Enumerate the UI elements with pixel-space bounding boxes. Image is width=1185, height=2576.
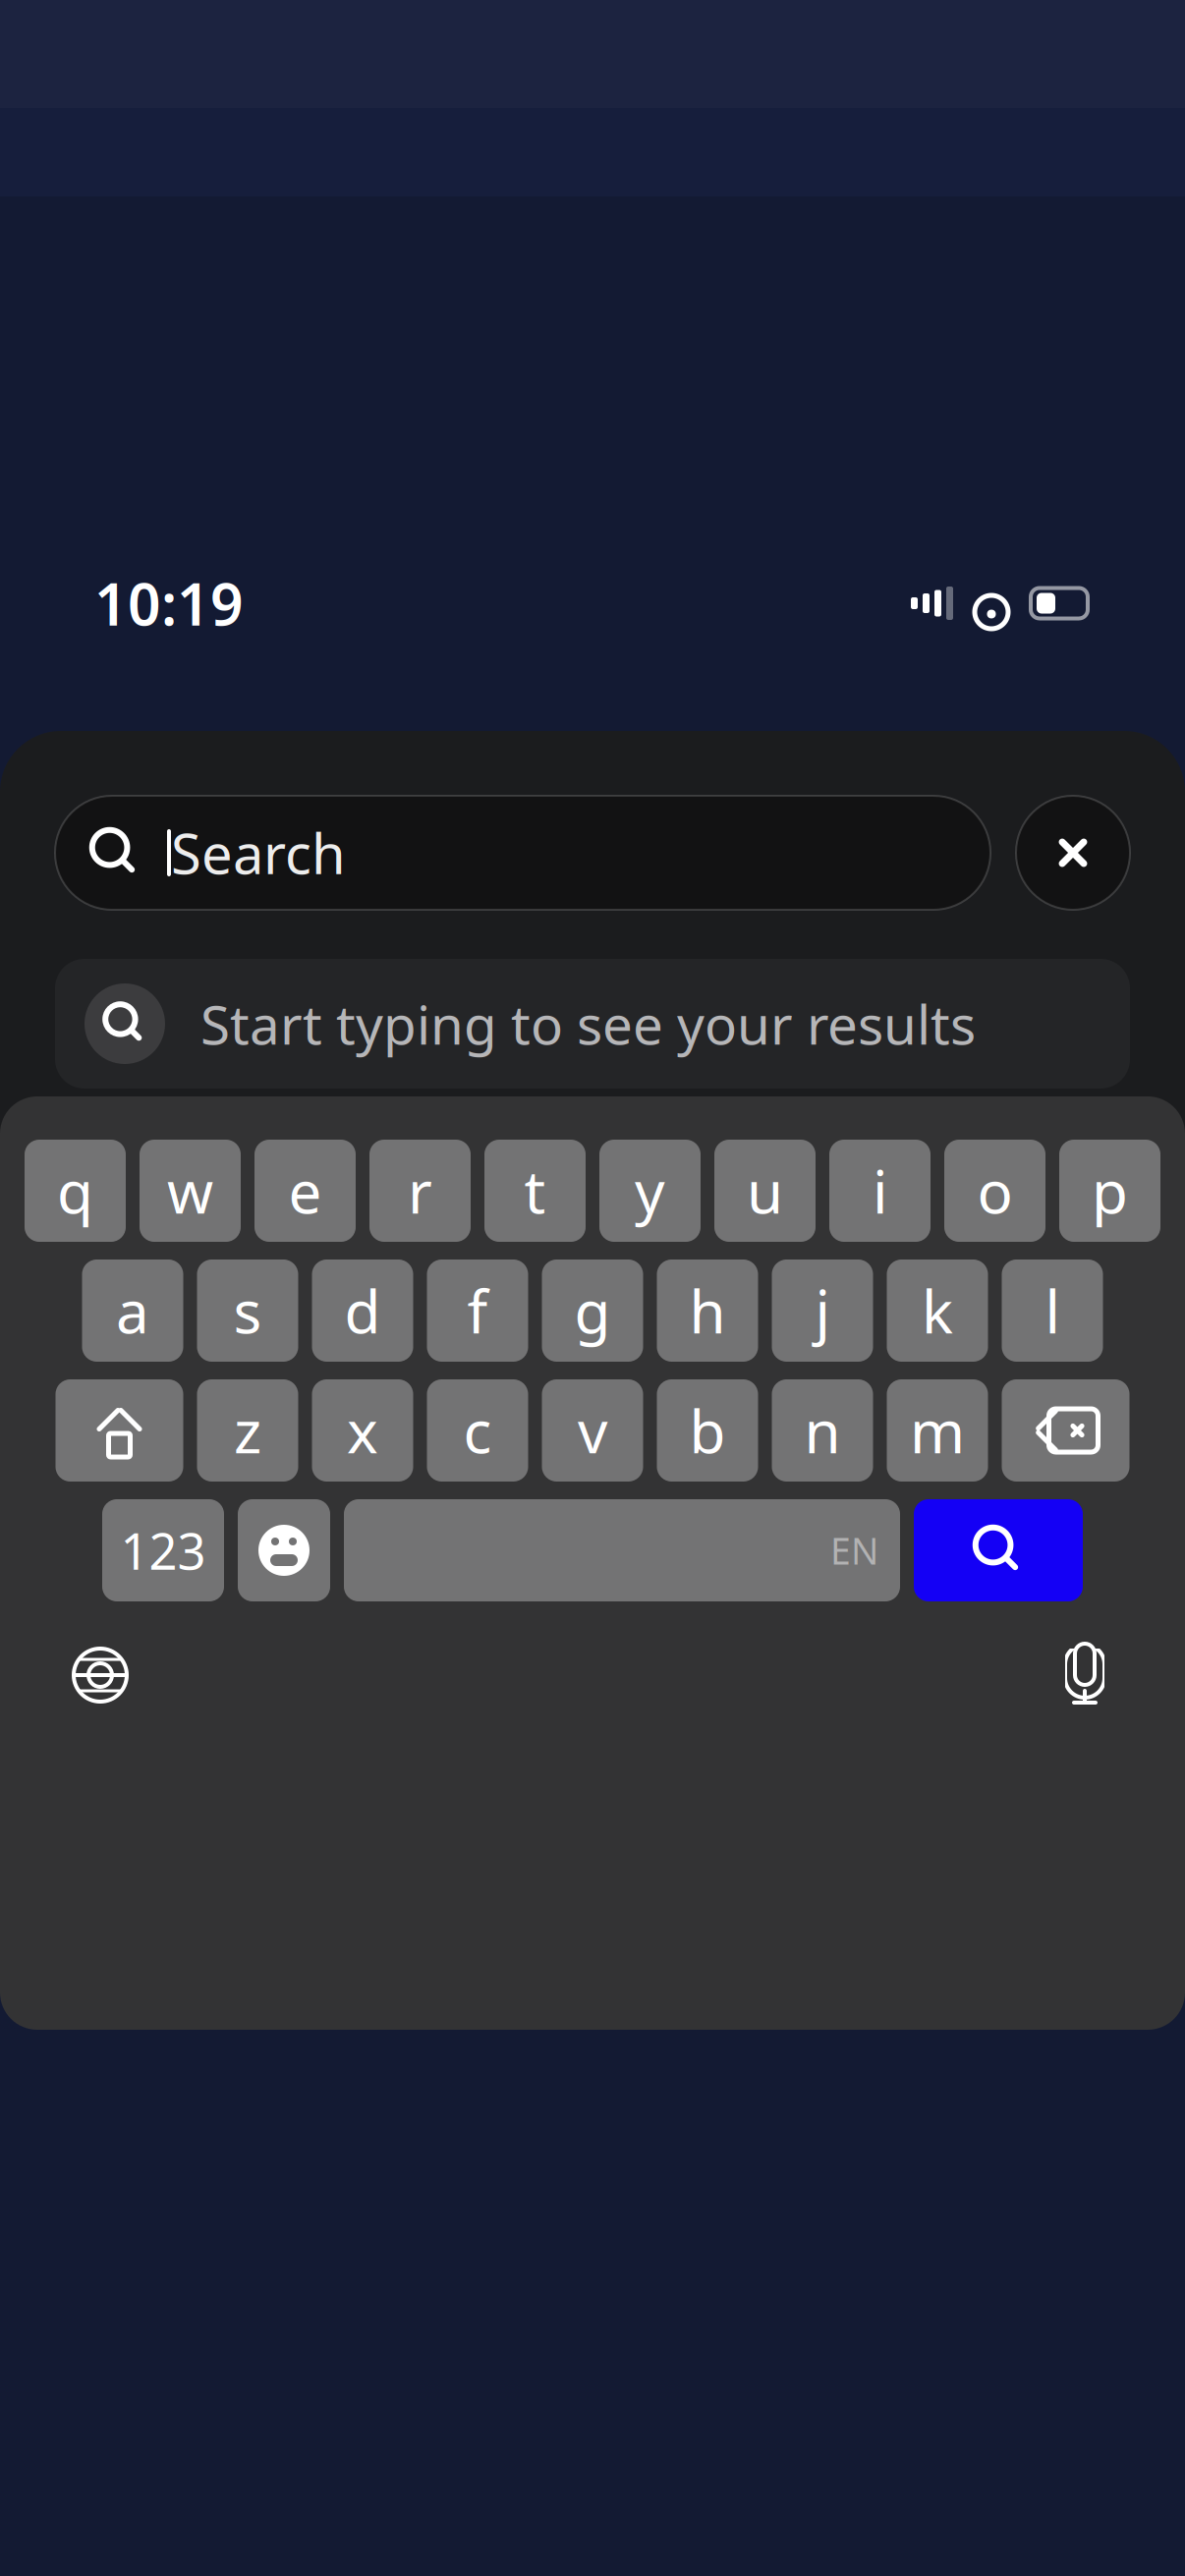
button[interactable]: r: [369, 1140, 471, 1242]
staticText: t: [524, 1152, 546, 1230]
button[interactable]: x: [312, 1379, 413, 1482]
button[interactable]: v: [542, 1379, 643, 1482]
staticText: y: [635, 1152, 665, 1230]
button[interactable]: 123: [102, 1499, 224, 1601]
button[interactable]: u: [714, 1140, 816, 1242]
button[interactable]: g: [542, 1260, 643, 1362]
button[interactable]: c: [427, 1379, 528, 1482]
button[interactable]: b: [657, 1379, 758, 1482]
button[interactable]: m: [887, 1379, 988, 1482]
button[interactable]: Dictation: [1026, 1621, 1144, 1729]
button[interactable]: Next keyboard: [41, 1621, 159, 1729]
button[interactable]: t: [484, 1140, 586, 1242]
staticText: q: [57, 1152, 93, 1230]
staticText: v: [578, 1391, 607, 1470]
button[interactable]: w: [140, 1140, 241, 1242]
staticText: EN: [830, 1526, 878, 1575]
button[interactable]: Search: [914, 1499, 1083, 1601]
button[interactable]: d: [312, 1260, 413, 1362]
button[interactable]: Emoji: [238, 1499, 330, 1601]
staticText: z: [234, 1391, 261, 1470]
staticText: 123: [120, 1517, 206, 1583]
staticText: j: [815, 1271, 830, 1350]
button[interactable]: f: [427, 1260, 528, 1362]
staticText: u: [747, 1152, 783, 1230]
staticText: h: [689, 1271, 726, 1350]
button[interactable]: i: [829, 1140, 931, 1242]
button[interactable]: q: [25, 1140, 126, 1242]
button[interactable]: p: [1059, 1140, 1160, 1242]
staticText: d: [344, 1271, 381, 1350]
staticText: k: [922, 1271, 953, 1350]
button[interactable]: o: [944, 1140, 1045, 1242]
staticText: i: [873, 1152, 887, 1230]
button[interactable]: l: [1002, 1260, 1103, 1362]
staticText: g: [574, 1271, 611, 1350]
staticText: 10:19: [94, 565, 244, 641]
button[interactable]: e: [254, 1140, 356, 1242]
button[interactable]: j: [772, 1260, 873, 1362]
button[interactable]: Close search: [1016, 796, 1130, 910]
button[interactable]: s: [197, 1260, 298, 1362]
staticText: Start typing to see your results: [200, 988, 976, 1059]
staticText: p: [1092, 1152, 1128, 1230]
staticText: w: [167, 1152, 213, 1230]
button[interactable]: Space: [344, 1499, 900, 1601]
staticText: o: [977, 1152, 1013, 1230]
staticText: r: [408, 1152, 432, 1230]
staticText: n: [804, 1391, 841, 1470]
staticText: s: [233, 1271, 262, 1350]
staticText: c: [463, 1391, 492, 1470]
staticText: x: [347, 1391, 378, 1470]
button[interactable]: k: [887, 1260, 988, 1362]
staticText: l: [1045, 1271, 1060, 1350]
staticText: m: [910, 1391, 965, 1470]
staticText: b: [689, 1391, 726, 1470]
button[interactable]: z: [197, 1379, 298, 1482]
button[interactable]: Delete: [1002, 1379, 1129, 1482]
button[interactable]: n: [772, 1379, 873, 1482]
button[interactable]: y: [599, 1140, 701, 1242]
button[interactable]: h: [657, 1260, 758, 1362]
staticText: f: [467, 1271, 488, 1350]
staticText: Search: [171, 816, 346, 889]
staticText: e: [288, 1152, 322, 1230]
button[interactable]: Shift: [56, 1379, 183, 1482]
button[interactable]: a: [82, 1260, 183, 1362]
staticText: a: [116, 1271, 149, 1350]
